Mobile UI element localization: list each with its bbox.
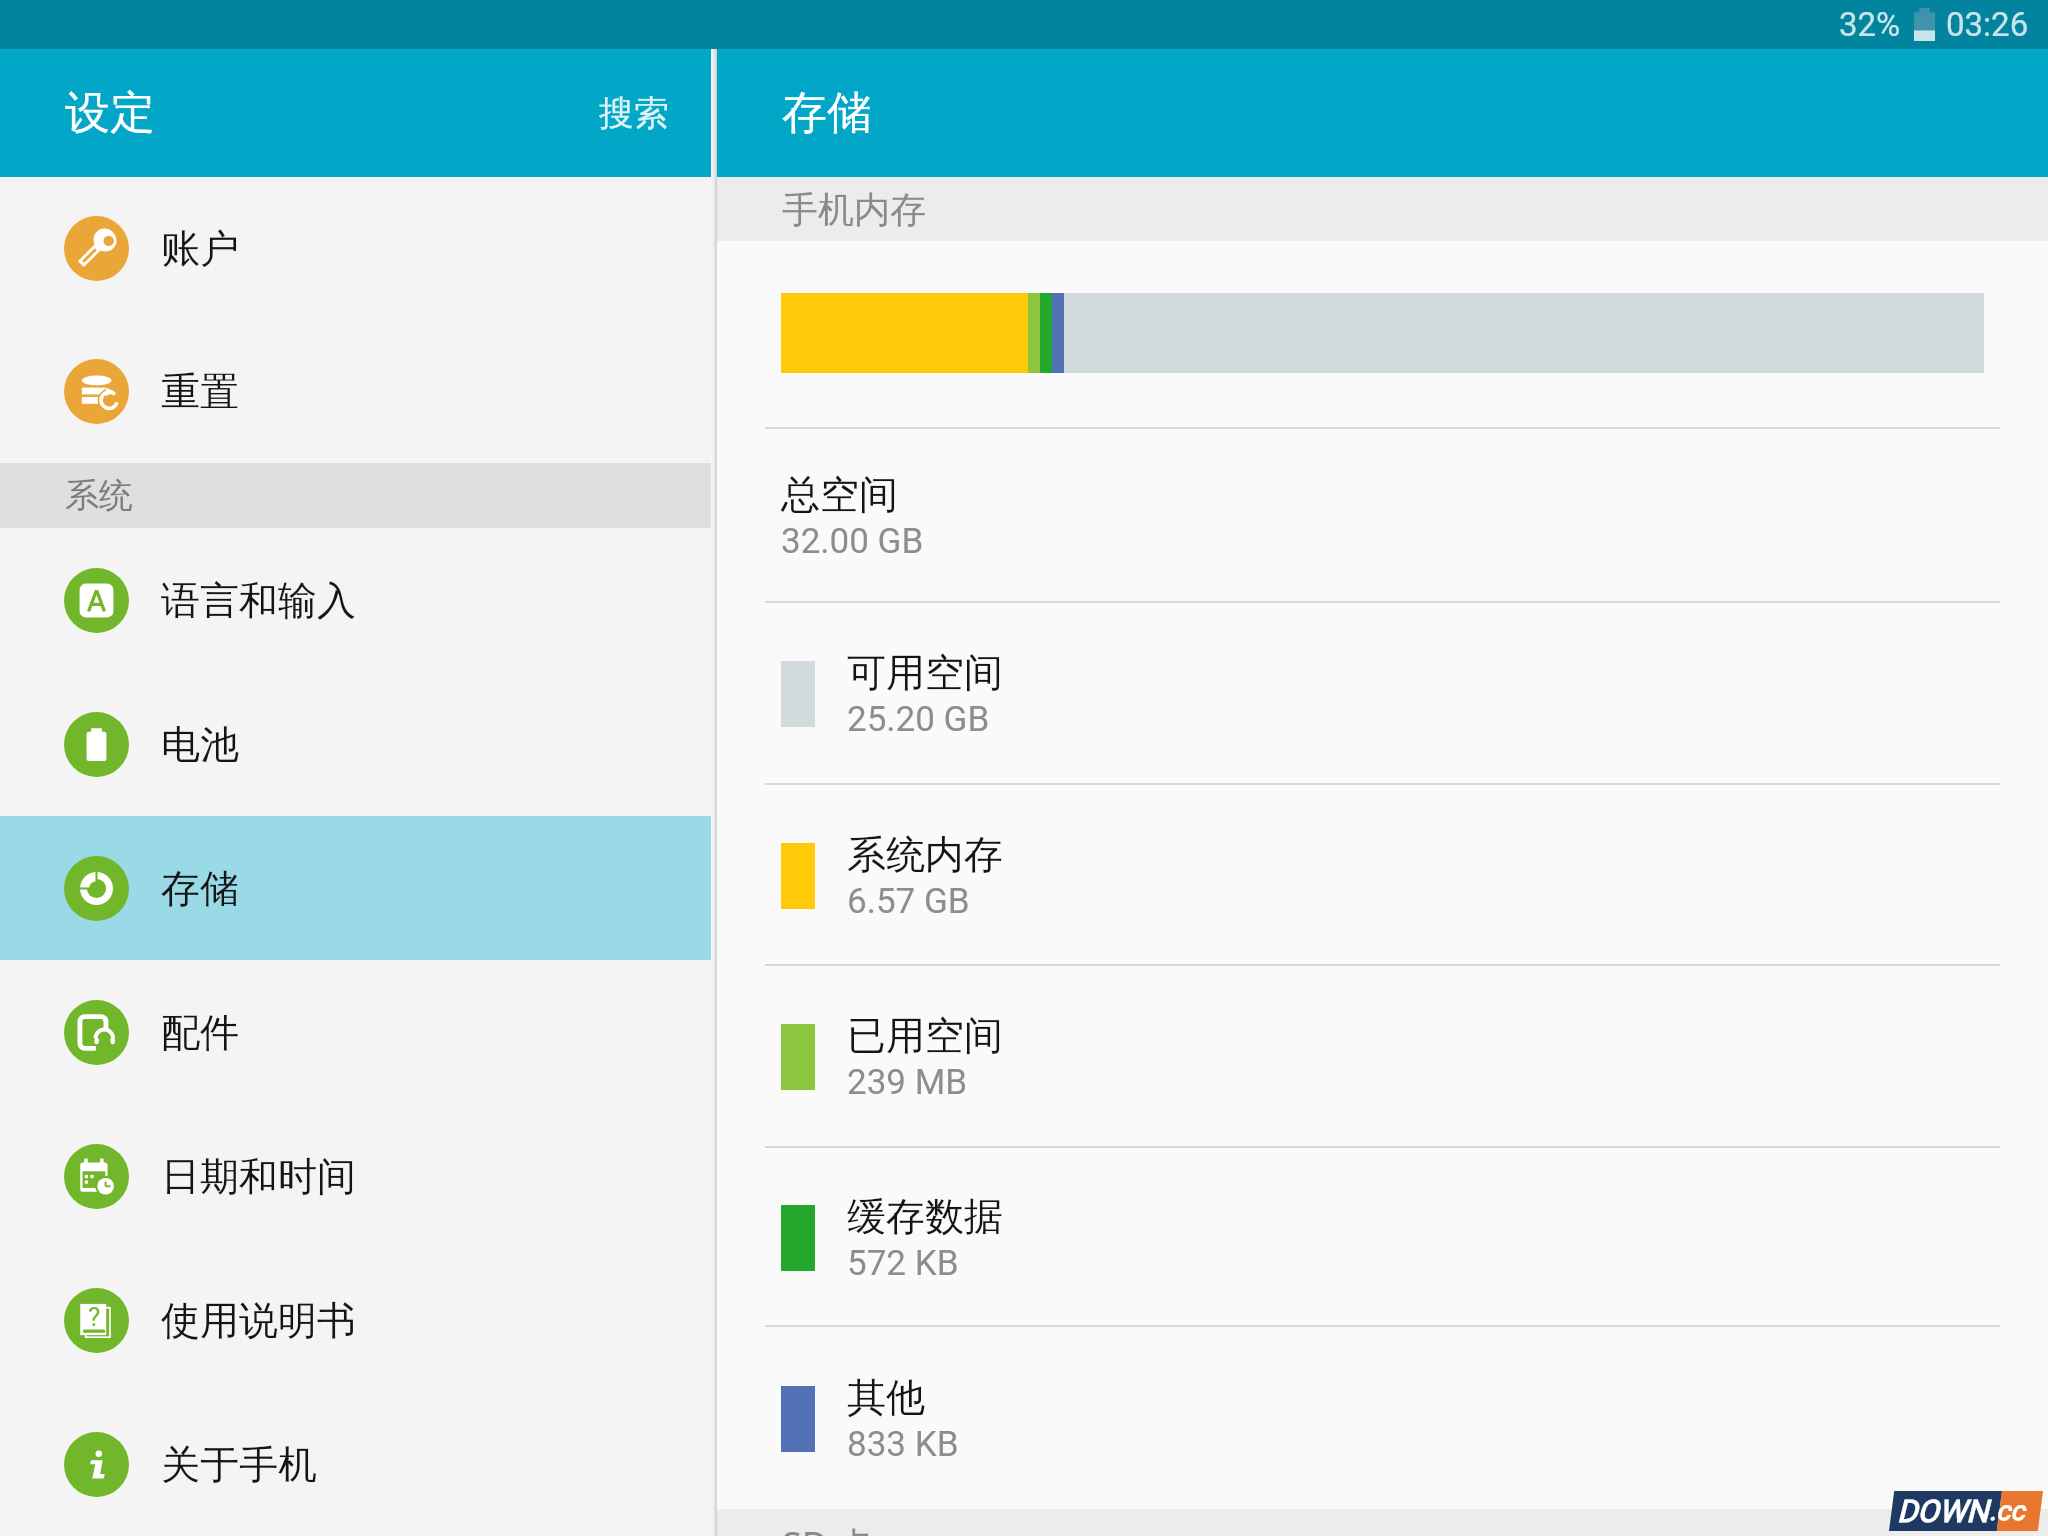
staticText: 电池 [161,720,239,769]
button[interactable]: 其他 [717,1327,2048,1509]
button[interactable]: 缓存数据 [717,1148,2048,1325]
staticText: 手机内存 [782,187,926,232]
staticText: 存储 [161,864,239,913]
button[interactable]: 关于手机 [0,1392,711,1536]
staticText: 配件 [161,1008,239,1057]
staticText: 总空间 [781,470,898,519]
staticText: .cc [1989,1495,2025,1527]
staticText: 搜索 [599,91,669,135]
button[interactable]: 账户 [0,177,711,320]
staticText: SD 卡 [782,1520,874,1536]
staticText: 可用空间 [847,648,1003,697]
staticText: 32% [1839,5,1901,44]
staticText: 语言和输入 [161,576,356,625]
staticText: 关于手机 [161,1440,317,1489]
staticText: 设定 [65,85,155,142]
button[interactable]: 系统内存 [717,785,2048,964]
button[interactable]: 语言和输入 [0,528,711,672]
button[interactable]: 总空间 [717,429,2048,601]
staticText: 账户 [161,224,239,273]
button[interactable]: 可用空间 [717,603,2048,783]
button[interactable]: ? [0,1248,711,1392]
staticText: 32.00 GB [781,521,924,562]
button[interactable]: 配件 [0,960,711,1104]
staticText: 系统 [65,474,133,517]
staticText: 系统内存 [847,830,1003,879]
button[interactable]: 重置 [0,320,711,463]
staticText: ? [88,1302,101,1332]
staticText: 03:26 [1946,5,2029,44]
staticText: 239 MB [847,1062,968,1103]
staticText: 833 KB [847,1424,959,1465]
staticText: 6.57 GB [847,881,970,922]
button[interactable]: 日期和时间 [0,1104,711,1248]
staticText: 其他 [847,1373,925,1422]
staticText: 已用空间 [847,1011,1003,1060]
button[interactable]: Search [559,61,711,165]
staticText: 25.20 GB [847,699,990,740]
staticText: 572 KB [847,1243,959,1284]
staticText: 日期和时间 [161,1152,356,1201]
button[interactable]: 存储 [0,816,711,960]
staticText: DOWN [1897,1493,1989,1529]
staticText: 使用说明书 [161,1296,356,1345]
staticText: 重置 [161,367,239,416]
button[interactable]: 已用空间 [717,966,2048,1146]
staticText: 缓存数据 [847,1192,1003,1241]
staticText: 存储 [782,85,872,142]
button[interactable]: 电池 [0,672,711,816]
